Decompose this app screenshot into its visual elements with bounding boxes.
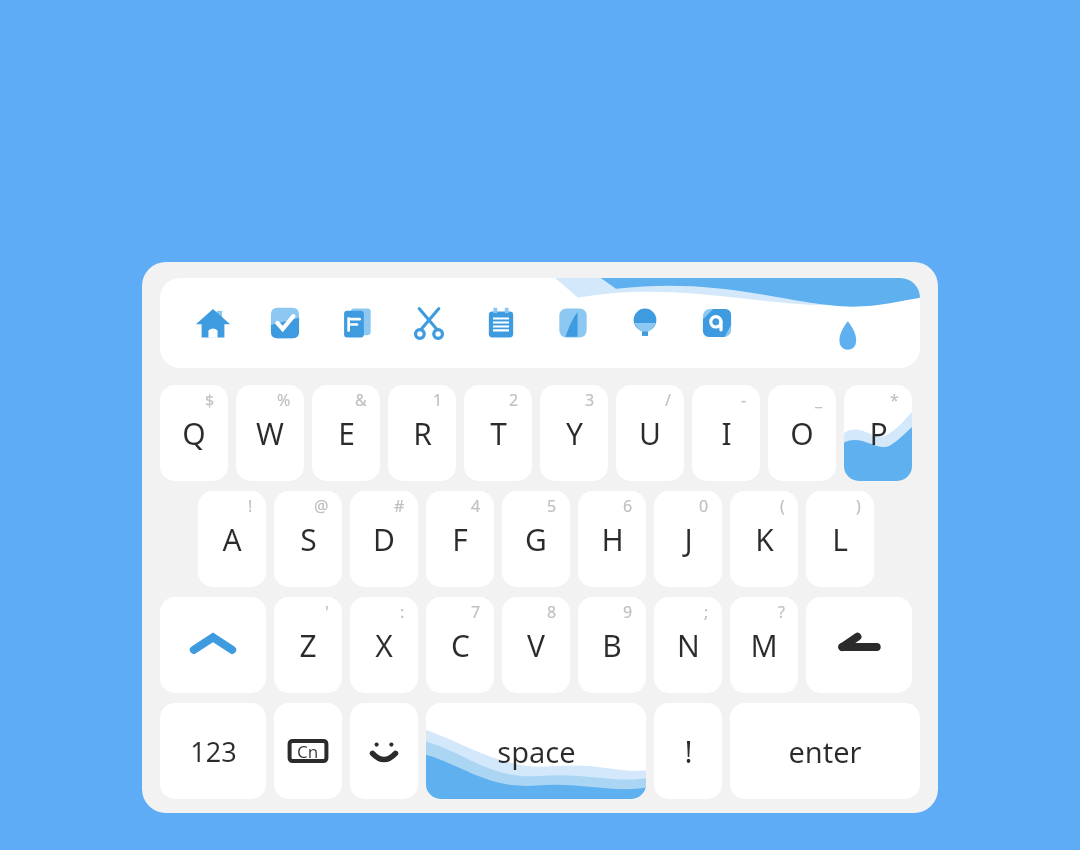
button[interactable]: 0 [654,491,722,587]
button[interactable]: space [426,703,646,799]
staticText: 9 [623,601,633,623]
staticText: O [790,413,814,454]
staticText: 0 [699,495,709,517]
staticText: H [601,519,624,560]
staticText: 7 [471,601,481,623]
staticText: M [750,625,778,666]
staticText: 5 [547,495,557,517]
staticText: X [375,625,393,666]
button[interactable]: - [692,385,760,481]
button[interactable]: Notepad [478,300,524,346]
button[interactable]: Translate [694,300,740,346]
staticText: E [338,413,355,454]
button[interactable]: Cut [406,300,452,346]
button[interactable]: @ [274,491,342,587]
button[interactable]: 1 [388,385,456,481]
staticText: _ [815,389,823,411]
staticText: T [490,413,507,454]
staticText: F [452,519,468,560]
button[interactable]: Clipboard [334,300,380,346]
button[interactable]: * [844,385,912,481]
staticText: ' [325,601,329,623]
staticText: N [677,625,700,666]
staticText: & [355,389,367,411]
button[interactable]: _ [768,385,836,481]
button[interactable]: Night mode [550,300,596,346]
staticText: 2 [509,389,519,411]
button[interactable]: Language [274,703,342,799]
button[interactable]: % [236,385,304,481]
staticText: Z [299,625,317,666]
staticText: Cn [297,740,319,763]
staticText: 3 [585,389,595,411]
staticText: enter [788,732,862,771]
button[interactable]: & [312,385,380,481]
staticText: L [832,519,848,560]
button[interactable]: 2 [464,385,532,481]
staticText: U [639,413,661,454]
staticText: G [525,519,547,560]
staticText: I [721,413,732,454]
button[interactable]: 7 [426,597,494,693]
staticText: S [300,519,317,560]
button[interactable]: ? [730,597,798,693]
button[interactable]: ; [654,597,722,693]
staticText: ( [780,495,785,517]
button[interactable]: Brightness [622,300,668,346]
staticText: ; [704,601,709,623]
button[interactable]: 4 [426,491,494,587]
staticText: % [277,389,291,411]
button[interactable]: ! [654,703,722,799]
button[interactable]: enter [730,703,920,799]
button[interactable]: ) [806,491,874,587]
button[interactable]: 123 [160,703,266,799]
button[interactable]: Backspace [806,597,912,693]
staticText: : [400,601,405,623]
staticText: Y [566,413,583,454]
staticText: $ [205,389,215,411]
staticText: K [755,519,774,560]
staticText: space [497,732,576,771]
staticText: C [451,625,470,666]
button[interactable]: 9 [578,597,646,693]
staticText: @ [314,495,329,517]
staticText: ! [684,731,693,772]
staticText: / [665,389,671,411]
staticText: P [869,413,888,454]
button[interactable]: ( [730,491,798,587]
staticText: A [222,519,242,560]
button[interactable]: Tasks [262,300,308,346]
button[interactable]: 3 [540,385,608,481]
button[interactable]: 5 [502,491,570,587]
button[interactable]: Home [190,300,236,346]
staticText: 8 [547,601,557,623]
staticText: B [602,625,622,666]
button[interactable]: Shift [160,597,266,693]
button[interactable]: Emoji [350,703,418,799]
staticText: J [684,519,693,560]
button[interactable]: 8 [502,597,570,693]
staticText: 1 [433,389,443,411]
staticText: - [741,389,747,411]
staticText: Q [182,413,206,454]
staticText: ) [856,495,861,517]
staticText: R [413,413,432,454]
staticText: W [256,413,284,454]
button[interactable]: $ [160,385,228,481]
staticText: # [394,495,405,517]
staticText: V [527,625,545,666]
button[interactable]: ! [198,491,266,587]
staticText: D [373,519,395,560]
button[interactable]: 6 [578,491,646,587]
button[interactable]: ' [274,597,342,693]
button[interactable]: / [616,385,684,481]
button[interactable]: # [350,491,418,587]
staticText: 6 [623,495,633,517]
staticText: ! [248,495,253,517]
staticText: 123 [190,733,237,770]
staticText: ? [778,601,785,623]
staticText: * [890,389,899,411]
button[interactable]: : [350,597,418,693]
staticText: 4 [471,495,481,517]
